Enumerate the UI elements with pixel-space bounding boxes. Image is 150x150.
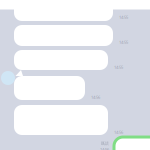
staticText: 14:56 [100,147,109,150]
staticText: 14:56 [91,94,100,100]
staticText: 14:55 [119,14,128,20]
staticText: 既読 [101,141,109,146]
staticText: 14:55 [119,39,128,45]
staticText: 14:55 [114,64,123,70]
staticText: 14:56 [114,129,123,135]
